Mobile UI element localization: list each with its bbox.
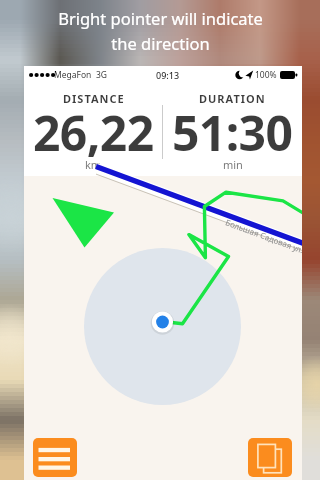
staticText: min bbox=[223, 157, 243, 172]
staticText: DURATION bbox=[199, 91, 266, 106]
staticText: MegaFon bbox=[54, 69, 92, 81]
staticText: 26,22 bbox=[33, 100, 154, 165]
staticText: 09:13 bbox=[156, 69, 180, 81]
staticText: the direction bbox=[111, 32, 210, 54]
staticText: 3G bbox=[96, 69, 108, 81]
staticText: Bright pointer will indicate bbox=[58, 7, 263, 29]
staticText: 100% bbox=[255, 69, 277, 81]
button[interactable]: Menu bbox=[33, 438, 77, 477]
staticText: km bbox=[85, 157, 102, 172]
staticText: 51:30 bbox=[172, 100, 293, 165]
staticText: DISTANCE bbox=[63, 91, 125, 106]
button[interactable]: Map layers bbox=[248, 438, 292, 477]
staticText: Большая Садовая ул. bbox=[224, 216, 302, 255]
